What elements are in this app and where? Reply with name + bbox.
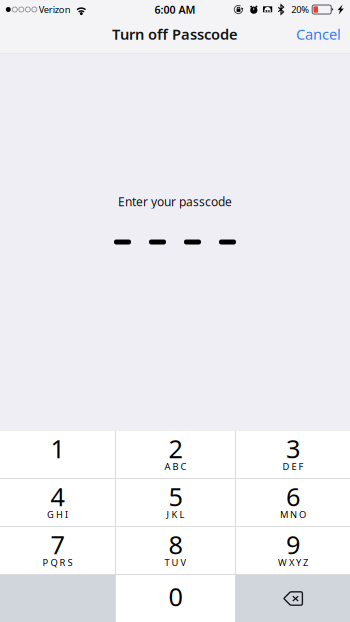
- button[interactable]: 6: [236, 479, 350, 526]
- staticText: T U V: [164, 556, 186, 569]
- button[interactable]: 1: [0, 431, 115, 478]
- button[interactable]: 4: [0, 479, 115, 526]
- staticText: D E F: [282, 460, 303, 473]
- staticText: W X Y Z: [278, 556, 308, 569]
- staticText: 2: [168, 432, 182, 465]
- staticText: Verizon: [39, 3, 71, 16]
- staticText: 6:00 AM: [154, 2, 195, 17]
- button[interactable]: 7: [0, 527, 115, 574]
- staticText: Turn off Passcode: [112, 24, 238, 44]
- button[interactable]: 8: [116, 527, 235, 574]
- staticText: Cancel: [296, 24, 341, 44]
- staticText: Enter your passcode: [118, 193, 232, 209]
- staticText: 4: [50, 480, 64, 513]
- staticText: J K L: [166, 508, 184, 521]
- staticText: 0: [168, 580, 182, 613]
- staticText: 20%: [291, 3, 309, 16]
- button[interactable]: 0: [116, 575, 235, 622]
- staticText: 5: [168, 480, 182, 513]
- staticText: M N O: [280, 508, 306, 521]
- staticText: 1: [50, 432, 64, 465]
- button[interactable]: Cancel: [287, 19, 350, 53]
- staticText: 8: [168, 528, 182, 561]
- staticText: G H I: [47, 508, 68, 521]
- button[interactable]: 5: [116, 479, 235, 526]
- button[interactable]: 3: [236, 431, 350, 478]
- staticText: 9: [286, 528, 300, 561]
- button[interactable]: Delete: [236, 575, 350, 622]
- staticText: P Q R S: [42, 556, 72, 569]
- button[interactable]: 2: [116, 431, 235, 478]
- staticText: 7: [50, 528, 64, 561]
- staticText: 3: [286, 432, 300, 465]
- button[interactable]: 9: [236, 527, 350, 574]
- staticText: A B C: [164, 460, 186, 473]
- staticText: 6: [286, 480, 300, 513]
